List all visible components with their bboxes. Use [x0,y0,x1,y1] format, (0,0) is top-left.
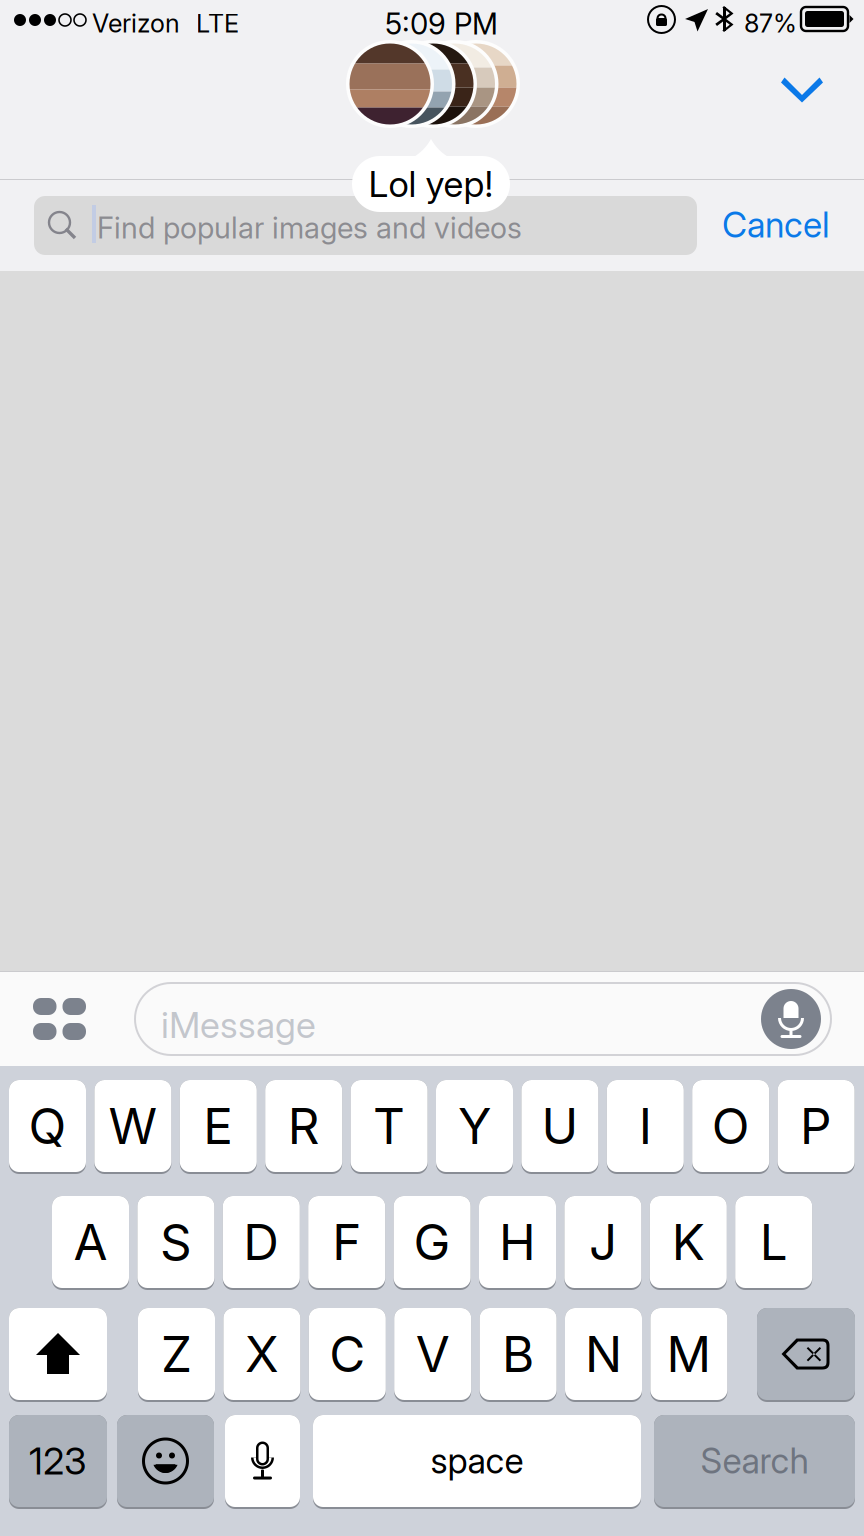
button[interactable]: X [223,1308,300,1402]
staticText: O [712,1096,750,1156]
button[interactable]: F [308,1196,385,1290]
button[interactable]: K [650,1196,727,1290]
staticText: C [329,1324,365,1384]
button[interactable]: Hide details [747,48,857,132]
button[interactable]: O [692,1080,769,1174]
staticText: D [243,1212,279,1272]
button[interactable]: Shift [9,1308,107,1402]
staticText: W [108,1096,157,1156]
staticText: 123 [29,1438,87,1484]
button[interactable]: Q [9,1080,86,1174]
staticText: U [541,1096,578,1156]
button[interactable]: J [564,1196,641,1290]
button[interactable]: E [180,1080,257,1174]
staticText: B [502,1324,534,1384]
button[interactable]: Delete [757,1308,855,1402]
button[interactable]: Y [436,1080,513,1174]
button[interactable]: Find popular images and videos [34,196,697,255]
button[interactable]: R [265,1080,342,1174]
staticText: iMessage [161,1003,316,1047]
staticText: Lol yep! [368,162,493,206]
staticText: space [430,1440,523,1482]
button[interactable]: P [778,1080,855,1174]
staticText: M [666,1324,711,1384]
button[interactable]: G [394,1196,471,1290]
button[interactable]: Dictate [761,989,821,1049]
staticText: 5:09 PM [385,6,498,41]
staticText: Cancel [722,204,830,246]
staticText: Search [700,1440,808,1482]
staticText: N [585,1324,622,1384]
staticText: Z [161,1324,192,1384]
button[interactable]: T [351,1080,428,1174]
button[interactable]: L [735,1196,812,1290]
staticText: H [499,1212,536,1272]
button[interactable]: Z [138,1308,215,1402]
button[interactable]: Dictate [225,1415,300,1509]
staticText: S [160,1212,192,1272]
staticText: Q [28,1096,66,1156]
button[interactable]: Cancel [706,195,846,255]
staticText: E [203,1096,233,1156]
button[interactable]: B [480,1308,557,1402]
staticText: Find popular images and videos [97,210,522,245]
button[interactable]: Apps [9,973,109,1065]
button[interactable]: M [650,1308,727,1402]
button[interactable]: W [94,1080,171,1174]
staticText: LTE [196,8,239,39]
staticText: Verizon [92,8,180,39]
staticText: T [373,1096,405,1156]
button[interactable]: S [137,1196,214,1290]
button[interactable]: V [394,1308,471,1402]
button[interactable]: D [223,1196,300,1290]
button[interactable]: U [521,1080,598,1174]
button[interactable]: C [309,1308,386,1402]
staticText: L [760,1212,788,1272]
button[interactable]: 123 [9,1415,107,1509]
staticText: F [332,1212,361,1272]
staticText: Y [458,1096,491,1156]
button[interactable]: space [313,1415,641,1509]
staticText: K [672,1212,705,1272]
staticText: A [73,1212,107,1272]
button[interactable]: N [565,1308,642,1402]
staticText: J [589,1212,617,1272]
staticText: R [288,1096,320,1156]
staticText: I [639,1096,652,1156]
button[interactable]: Search [654,1415,855,1509]
button[interactable]: I [607,1080,684,1174]
staticText: G [414,1212,451,1272]
button[interactable]: Emoji [117,1415,214,1509]
staticText: 87% [744,8,797,39]
button[interactable]: H [479,1196,556,1290]
staticText: V [416,1324,450,1384]
staticText: P [800,1096,832,1156]
button[interactable]: A [52,1196,129,1290]
staticText: X [245,1324,279,1384]
